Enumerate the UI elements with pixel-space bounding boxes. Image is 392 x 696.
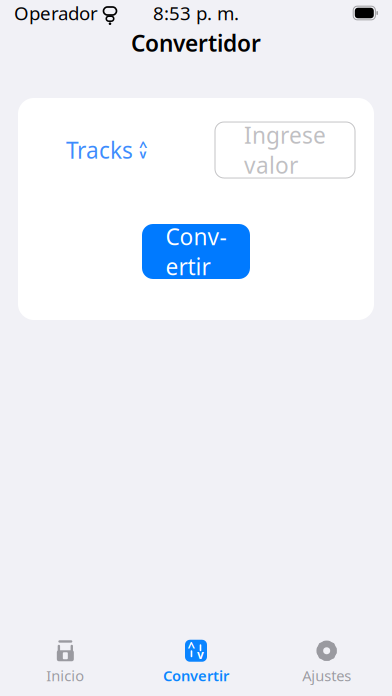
staticText: Convertidor <box>131 28 261 58</box>
button[interactable]: Tracks <box>60 127 154 173</box>
button[interactable]: Convertir <box>142 224 250 279</box>
staticText: Convertir <box>165 221 226 282</box>
staticText: Ingrese valor <box>244 120 326 180</box>
button[interactable]: ^ <box>131 637 261 687</box>
staticText: ^ <box>187 638 195 656</box>
staticText: Tracks <box>66 135 133 165</box>
staticText: v <box>197 646 204 662</box>
button[interactable]: Ingrese valor <box>215 122 355 178</box>
staticText: 8:53 p. m. <box>153 1 239 25</box>
button[interactable]: Inicio <box>0 637 131 687</box>
staticText: Inicio <box>46 666 84 685</box>
staticText: v <box>139 146 146 162</box>
staticText: Convertir <box>163 666 229 685</box>
staticText: Operador <box>14 1 98 25</box>
staticText: Ajustes <box>302 666 351 685</box>
button[interactable]: Ajustes <box>261 637 392 687</box>
staticText: ^ <box>139 136 147 156</box>
